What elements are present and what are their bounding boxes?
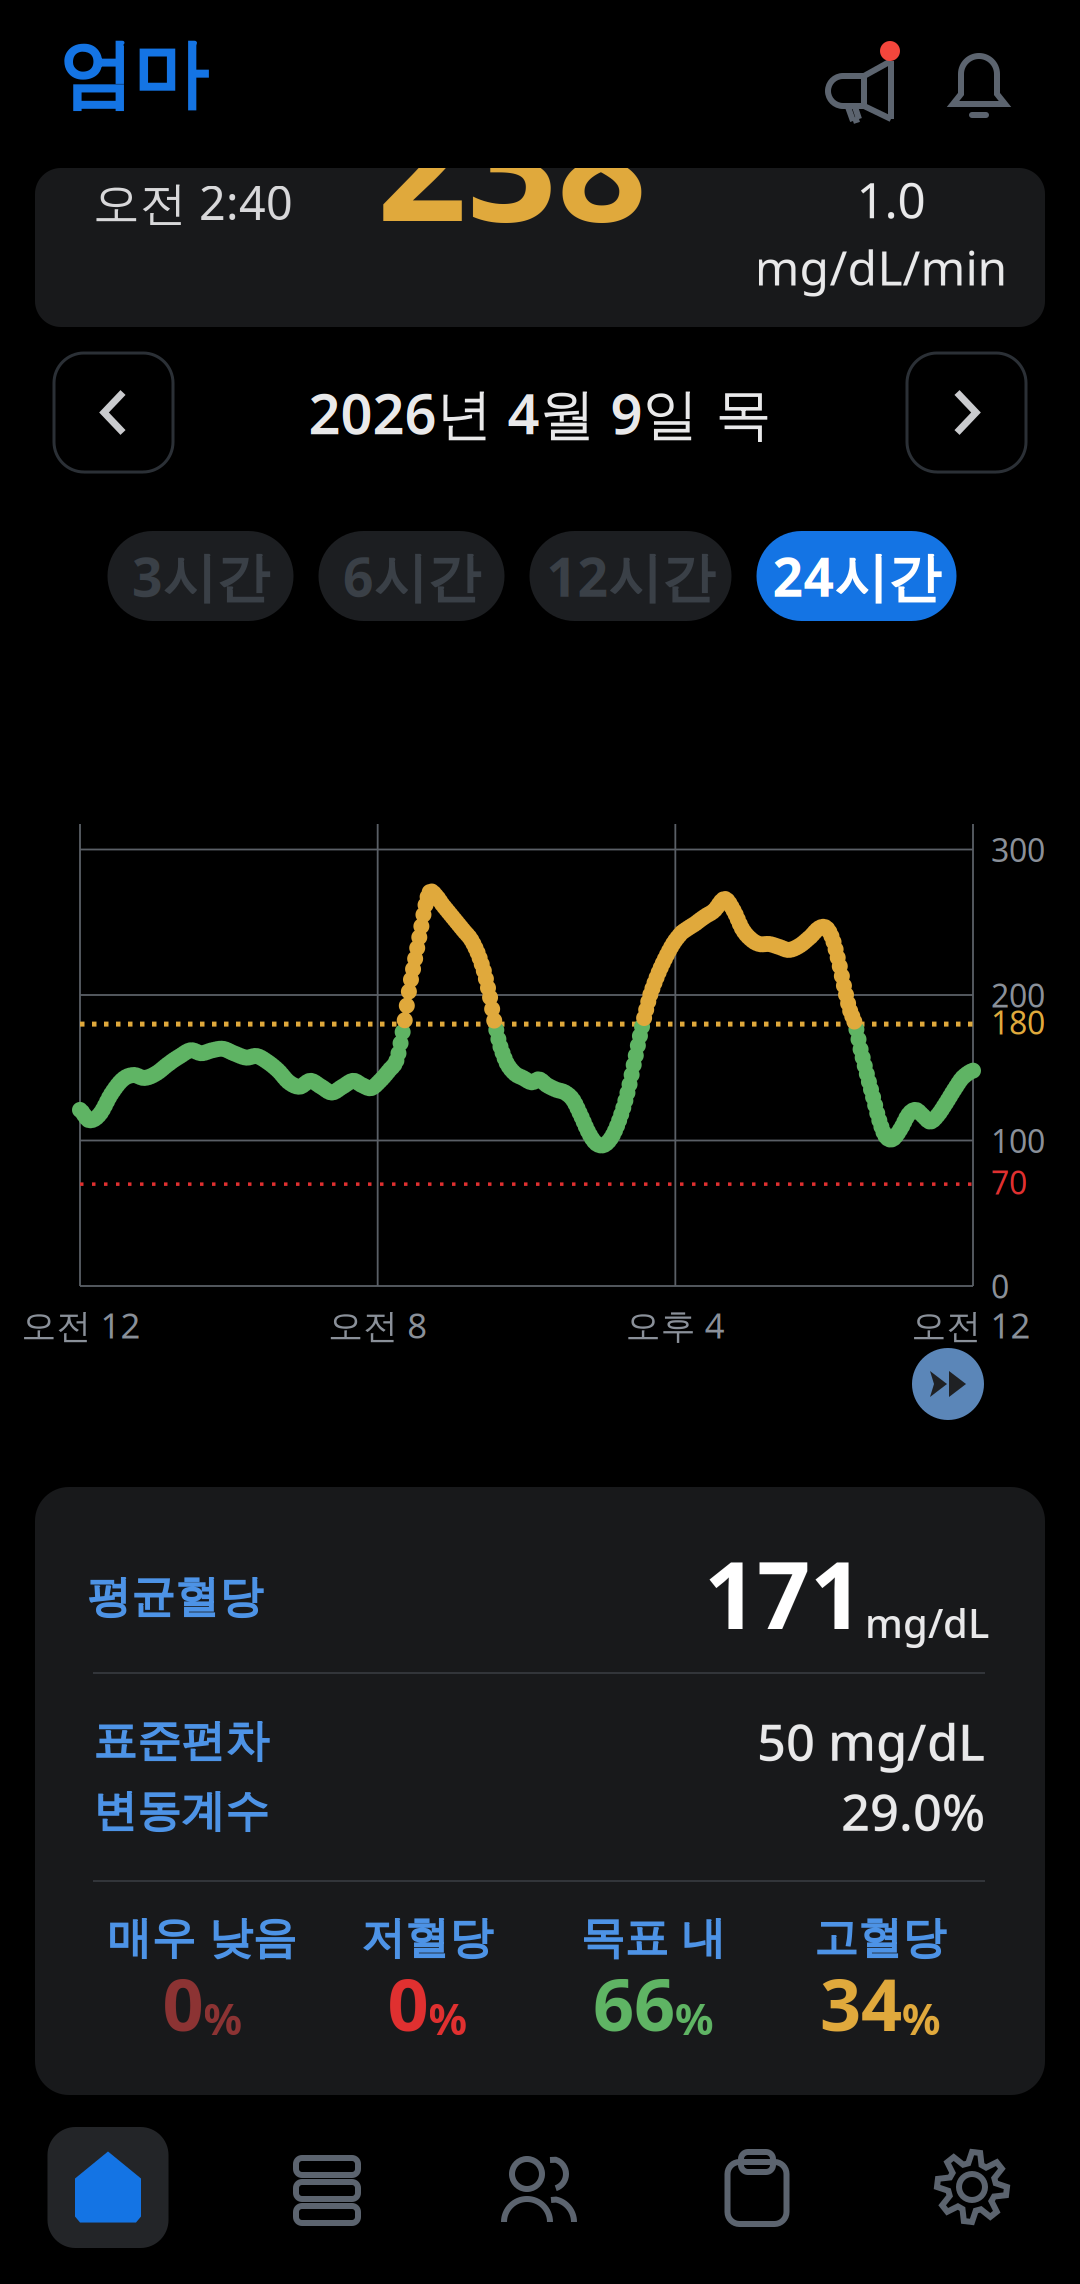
button[interactable]: Next day <box>907 353 1026 472</box>
staticText: 0 <box>991 1265 1009 1307</box>
staticText: mg/dL/min <box>754 235 1007 299</box>
staticText: 오전 12 <box>911 1302 1030 1348</box>
staticText: 표준편차 <box>93 1714 269 1768</box>
button[interactable]: Followers <box>459 2154 619 2284</box>
staticText: 66 <box>593 1955 675 2051</box>
button[interactable]: Notifications <box>936 42 1024 146</box>
staticText: 0 <box>162 1955 203 2051</box>
staticText: 12시간 <box>546 541 714 611</box>
staticText: 평균혈당 <box>87 1570 263 1624</box>
staticText: 엄마 <box>58 29 208 121</box>
button[interactable]: Reports <box>677 2152 837 2284</box>
staticText: 오전 8 <box>328 1302 427 1348</box>
staticText: 고혈당 <box>814 1911 946 1965</box>
button[interactable]: 6시간 <box>318 531 504 621</box>
staticText: 300 <box>991 828 1045 871</box>
staticText: 180 <box>991 1001 1045 1043</box>
staticText: 70 <box>991 1161 1027 1203</box>
staticText: 매우 낮음 <box>107 1911 296 1965</box>
button[interactable]: Previous day <box>54 353 173 472</box>
button[interactable]: 3시간 <box>107 531 293 621</box>
staticText: % <box>203 1990 241 2047</box>
staticText: 0 <box>387 1955 428 2051</box>
staticText: 저혈당 <box>361 1911 493 1965</box>
staticText: 238 <box>377 55 647 264</box>
staticText: 2026년 4월 9일 목 <box>308 375 771 450</box>
button[interactable]: Announcements <box>808 20 916 138</box>
button[interactable]: 12시간 <box>529 531 731 621</box>
staticText: 50 mg/dL <box>757 1707 985 1775</box>
staticText: 오전 2:40 <box>93 171 293 233</box>
staticText: 100 <box>991 1119 1045 1162</box>
staticText: 34 <box>820 1955 902 2051</box>
staticText: % <box>902 1990 940 2047</box>
staticText: % <box>428 1990 466 2047</box>
staticText: 목표 내 <box>580 1911 725 1965</box>
staticText: 변동계수 <box>93 1784 269 1838</box>
button[interactable]: Logbook <box>247 2158 407 2284</box>
staticText: 3시간 <box>132 541 269 611</box>
button[interactable]: Home <box>28 2127 188 2284</box>
staticText: 200 <box>991 974 1045 1016</box>
staticText: 29.0% <box>841 1777 985 1845</box>
staticText: 24시간 <box>772 541 940 611</box>
staticText: 6시간 <box>343 541 480 611</box>
staticText: 오후 4 <box>626 1302 725 1348</box>
staticText: 171 <box>704 1531 863 1655</box>
staticText: 오전 12 <box>21 1302 140 1348</box>
button[interactable]: Jump to latest <box>900 1336 996 1432</box>
staticText: % <box>675 1990 713 2047</box>
staticText: mg/dL <box>865 1596 989 1649</box>
button[interactable]: 24시간 <box>756 531 956 621</box>
staticText: 1.0 <box>856 166 925 232</box>
button[interactable]: Settings <box>892 2148 1052 2284</box>
